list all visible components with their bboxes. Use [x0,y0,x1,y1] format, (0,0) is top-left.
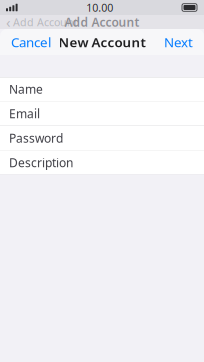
staticText: Cancel [11,33,51,51]
button[interactable]: Next [156,27,201,57]
staticText: Name [9,81,43,97]
button[interactable]: Email [0,101,204,125]
staticText: Password [9,130,63,146]
button[interactable]: Cancel [3,27,59,57]
staticText: Email [9,105,40,121]
button[interactable]: Name [0,77,204,101]
staticText: Add Account [13,15,78,29]
staticText: Description [9,154,73,170]
staticText: Next [164,33,193,51]
button[interactable]: Description [0,150,204,174]
staticText: 10.00 [86,0,113,15]
staticText: Add Account [64,14,139,30]
button[interactable]: Password [0,126,204,150]
staticText: ‹ [6,12,11,32]
staticText: New Account [58,33,145,51]
